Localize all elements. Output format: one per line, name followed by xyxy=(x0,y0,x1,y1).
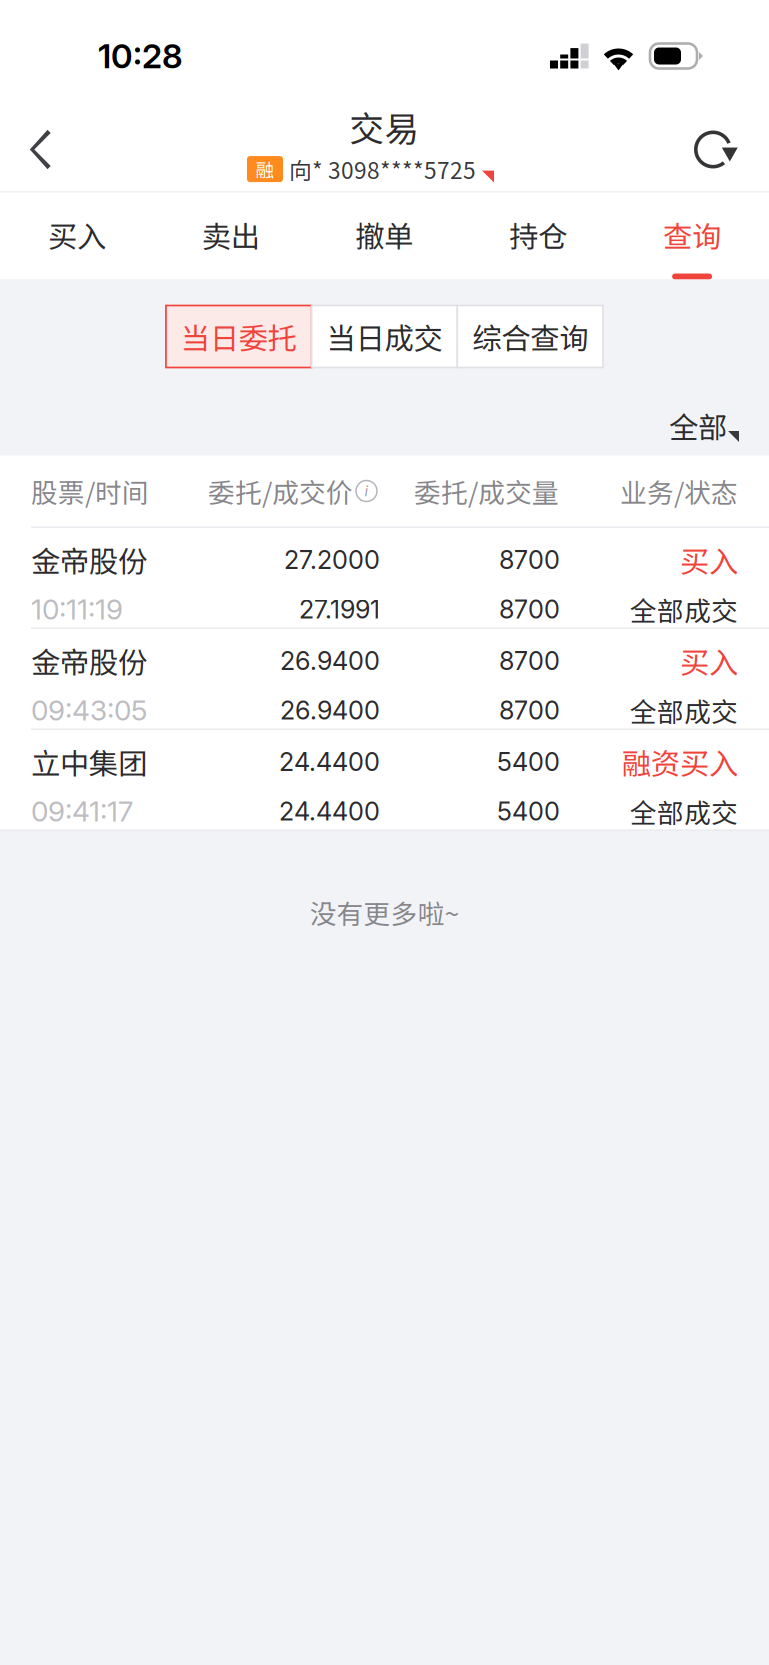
staticText: 买入 xyxy=(680,640,738,682)
button[interactable]: 金帝股份 xyxy=(0,528,769,627)
staticText: 综合查询 xyxy=(472,315,588,358)
staticText: 27.1991 xyxy=(299,594,380,625)
staticText: 8700 xyxy=(499,544,560,575)
staticText: 24.4400 xyxy=(279,796,380,827)
staticText: 撤单 xyxy=(355,213,413,256)
staticText: 全部成交 xyxy=(630,691,738,730)
button[interactable]: 买入 xyxy=(0,192,154,279)
staticText: 24.4400 xyxy=(279,746,380,777)
staticText: 向* 3098****5725 xyxy=(289,153,476,185)
staticText: 全部 xyxy=(669,404,727,447)
staticText: 8700 xyxy=(499,695,560,726)
button[interactable]: 当日委托 xyxy=(166,305,312,367)
button[interactable]: 查询 xyxy=(615,192,769,279)
staticText: 8700 xyxy=(499,645,560,676)
staticText: 买入 xyxy=(680,539,738,581)
staticText: i xyxy=(364,482,368,500)
button[interactable]: 当日成交 xyxy=(312,305,457,367)
button[interactable]: Back xyxy=(0,89,86,198)
button[interactable]: 立中集团 xyxy=(0,730,769,829)
staticText: 5400 xyxy=(497,796,560,827)
staticText: 委托/成交价 xyxy=(208,472,353,510)
staticText: 金帝股份 xyxy=(31,539,147,581)
button[interactable]: Refresh xyxy=(663,89,769,198)
staticText: 10:11:19 xyxy=(31,592,123,626)
staticText: 委托/成交量 xyxy=(414,472,559,510)
staticText: 买入 xyxy=(48,213,106,256)
staticText: 当日成交 xyxy=(326,315,442,358)
button[interactable]: 撤单 xyxy=(308,192,461,279)
staticText: 5400 xyxy=(497,746,560,777)
button[interactable]: 全部 xyxy=(669,399,769,451)
staticText: 融资买入 xyxy=(622,741,738,783)
staticText: 业务/状态 xyxy=(620,472,738,510)
staticText: 交易 xyxy=(349,101,419,152)
button[interactable]: 综合查询 xyxy=(457,305,603,367)
button[interactable]: 持仓 xyxy=(461,192,615,279)
staticText: 股票/时间 xyxy=(31,472,149,510)
staticText: 10:28 xyxy=(98,36,183,76)
staticText: 持仓 xyxy=(509,213,567,256)
button[interactable]: 金帝股份 xyxy=(0,629,769,728)
staticText: 融 xyxy=(255,156,274,183)
staticText: 全部成交 xyxy=(630,792,738,831)
staticText: 8700 xyxy=(499,594,560,625)
staticText: 09:41:17 xyxy=(31,794,133,828)
staticText: 卖出 xyxy=(202,213,260,256)
staticText: 27.2000 xyxy=(284,544,380,575)
staticText: 26.9400 xyxy=(280,695,380,726)
staticText: 09:43:05 xyxy=(31,693,147,727)
button[interactable]: 卖出 xyxy=(154,192,308,279)
staticText: 立中集团 xyxy=(31,741,147,783)
staticText: 金帝股份 xyxy=(31,640,147,682)
staticText: 查询 xyxy=(663,213,721,256)
staticText: 当日委托 xyxy=(181,315,297,358)
staticText: 没有更多啦~ xyxy=(309,893,459,932)
staticText: 26.9400 xyxy=(280,645,380,676)
staticText: 全部成交 xyxy=(630,590,738,629)
